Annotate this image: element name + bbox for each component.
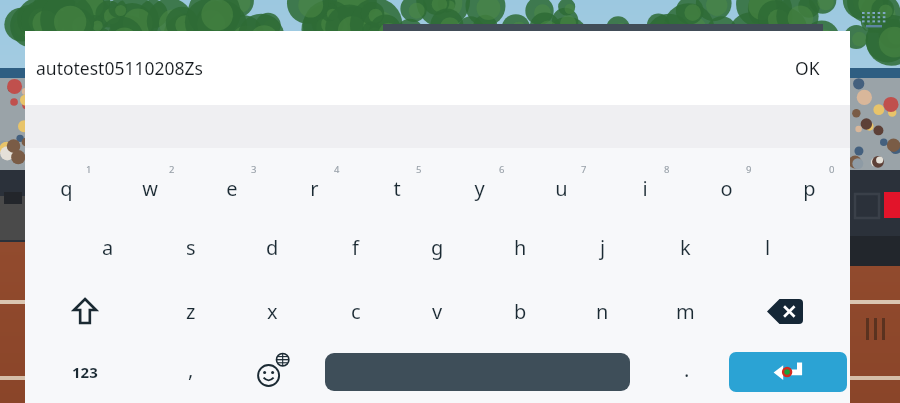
staticText: b — [514, 298, 527, 325]
button[interactable]: s — [149, 216, 232, 278]
staticText: k — [680, 234, 691, 261]
other: Keyboard handle — [862, 12, 888, 30]
button[interactable]: , — [149, 344, 232, 400]
staticText: 1 — [86, 163, 92, 176]
button[interactable]: v — [396, 280, 479, 342]
staticText: n — [596, 298, 609, 325]
staticText: 123 — [72, 362, 98, 382]
staticText: 3 — [251, 163, 257, 176]
staticText: v — [432, 298, 443, 325]
staticText: w — [142, 175, 158, 202]
button[interactable]: j — [561, 216, 644, 278]
staticText: u — [555, 175, 568, 202]
button[interactable]: autotest05110208Zs — [36, 31, 636, 105]
button[interactable]: k — [644, 216, 727, 278]
staticText: j — [600, 234, 606, 261]
staticText: z — [186, 298, 196, 325]
staticText: 7 — [581, 163, 587, 176]
staticText: g — [431, 234, 444, 261]
button[interactable]: c — [314, 280, 397, 342]
button[interactable]: a — [66, 216, 149, 278]
button[interactable]: r — [273, 152, 356, 214]
staticText: OK — [795, 56, 820, 80]
staticText: 4 — [334, 163, 340, 176]
button[interactable]: o — [685, 152, 768, 214]
button[interactable]: g — [396, 216, 479, 278]
button[interactable]: d — [231, 216, 314, 278]
button[interactable]: y — [438, 152, 521, 214]
staticText: autotest05110208Zs — [36, 56, 203, 80]
staticText: 2 — [169, 163, 175, 176]
staticText: d — [266, 234, 279, 261]
button[interactable]: q — [25, 152, 108, 214]
button[interactable]: l — [726, 216, 809, 278]
staticText: 0 — [829, 163, 835, 176]
staticText: 5 — [416, 163, 422, 176]
staticText: l — [765, 234, 771, 261]
staticText: r — [310, 175, 319, 202]
button[interactable]: Shift — [43, 280, 126, 342]
button[interactable]: m — [644, 280, 727, 342]
button[interactable]: Emoji and language — [231, 344, 314, 400]
button[interactable]: Space — [325, 353, 630, 391]
staticText: t — [393, 175, 401, 202]
staticText: 6 — [499, 163, 505, 176]
button[interactable]: OK — [764, 31, 850, 105]
button[interactable]: i — [603, 152, 686, 214]
button[interactable]: n — [561, 280, 644, 342]
staticText: q — [60, 175, 73, 202]
staticText: s — [186, 234, 196, 261]
button[interactable]: . — [645, 344, 728, 400]
button[interactable]: u — [520, 152, 603, 214]
button[interactable]: Enter — [729, 352, 847, 392]
button[interactable]: w — [108, 152, 191, 214]
staticText: a — [102, 234, 114, 261]
staticText: o — [720, 175, 733, 202]
button[interactable]: t — [355, 152, 438, 214]
staticText: 9 — [746, 163, 752, 176]
staticText: x — [267, 298, 278, 325]
staticText: . — [684, 356, 690, 383]
button[interactable]: x — [231, 280, 314, 342]
staticText: p — [803, 175, 816, 202]
staticText: e — [226, 175, 238, 202]
staticText: i — [642, 175, 648, 202]
button[interactable]: b — [479, 280, 562, 342]
staticText: y — [474, 175, 485, 202]
button[interactable]: h — [479, 216, 562, 278]
staticText: f — [352, 234, 359, 261]
button[interactable]: z — [149, 280, 232, 342]
button[interactable]: Backspace — [743, 280, 826, 342]
staticText: , — [188, 356, 194, 383]
staticText: 8 — [664, 163, 670, 176]
staticText: m — [676, 298, 695, 325]
button[interactable]: p — [768, 152, 851, 214]
button[interactable]: 123 — [43, 344, 126, 400]
button[interactable]: f — [314, 216, 397, 278]
button[interactable]: e — [190, 152, 273, 214]
staticText: c — [351, 298, 361, 325]
staticText: h — [514, 234, 527, 261]
